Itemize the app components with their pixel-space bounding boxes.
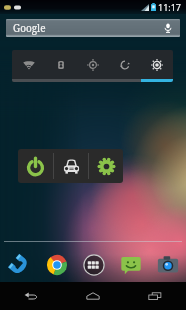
staticText: Google — [13, 21, 46, 35]
button[interactable]: Phone — [0, 253, 38, 277]
button[interactable]: Sync — [109, 50, 141, 79]
button[interactable]: GPS — [77, 50, 109, 79]
button[interactable]: Recents — [124, 282, 186, 310]
button[interactable]: Apps — [75, 253, 112, 277]
button[interactable]: Brightness — [141, 50, 173, 79]
staticText: 11:17 — [158, 1, 182, 13]
button[interactable]: Bluetooth — [45, 50, 77, 79]
button[interactable]: Voice search — [159, 19, 177, 37]
button[interactable]: Google — [6, 19, 180, 37]
button[interactable]: Chrome — [38, 253, 75, 277]
button[interactable]: Back — [0, 282, 62, 310]
button[interactable]: Car mode — [54, 149, 88, 183]
button[interactable]: Camera — [149, 253, 186, 277]
button[interactable]: Power — [18, 149, 53, 183]
button[interactable]: Settings — [89, 149, 123, 183]
button[interactable]: Home — [62, 282, 124, 310]
button[interactable]: Messaging — [112, 253, 149, 277]
button[interactable]: Wi-Fi — [12, 50, 45, 79]
